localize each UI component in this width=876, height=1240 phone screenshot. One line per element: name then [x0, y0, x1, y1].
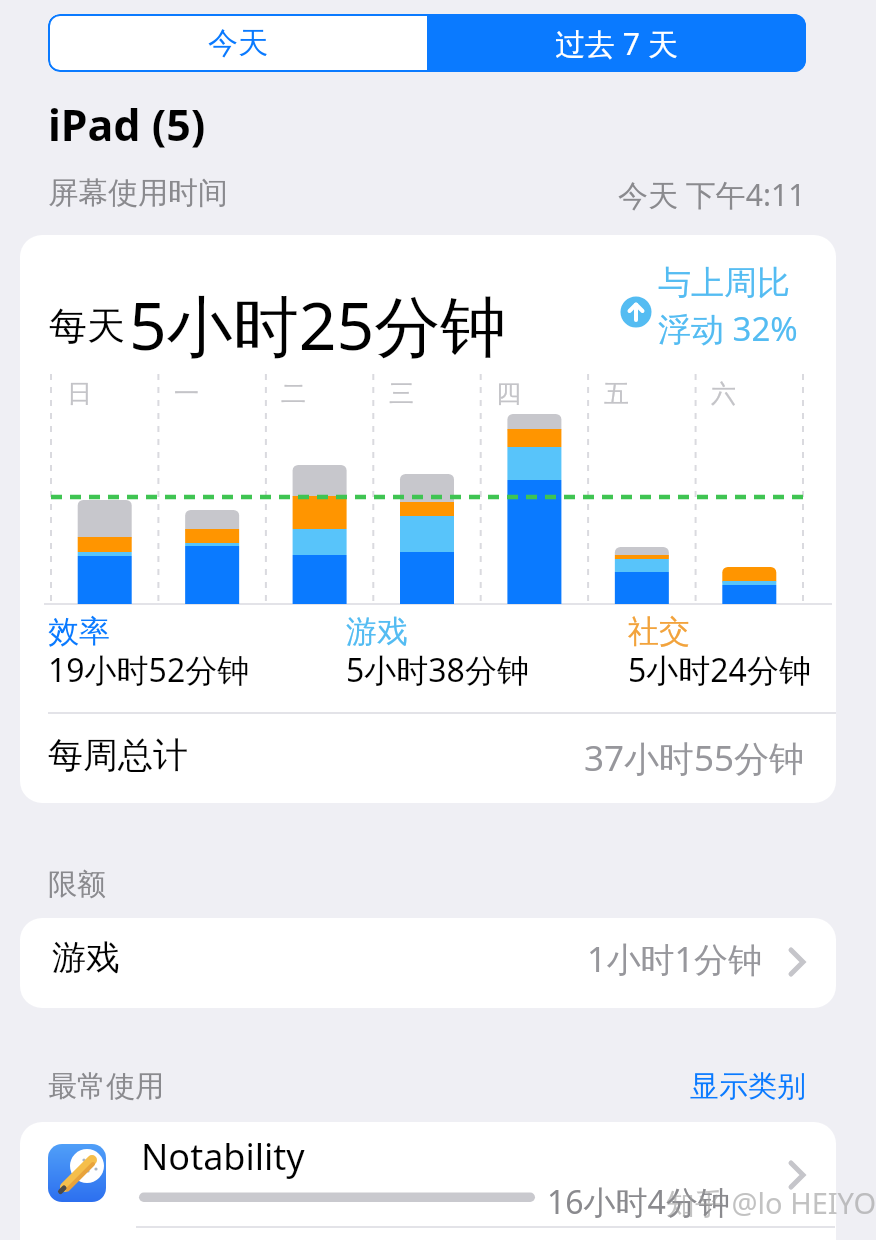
staticText: 今天	[208, 24, 268, 62]
staticText: 社交	[628, 612, 690, 651]
staticText: 限额	[48, 866, 106, 903]
staticText: 16小时4分钟	[547, 1180, 730, 1224]
staticText: 1小时1分钟	[587, 936, 762, 982]
button[interactable]: 过去 7 天	[427, 14, 806, 72]
staticText: 最常使用	[48, 1068, 164, 1105]
staticText: Notability	[141, 1132, 305, 1181]
button[interactable]	[20, 918, 836, 1008]
staticText: 五	[604, 378, 629, 409]
staticText: 与上周比	[658, 262, 790, 304]
staticText: 屏幕使用时间	[48, 174, 228, 212]
staticText: 5小时25分钟	[129, 279, 507, 369]
staticText: 日	[67, 378, 92, 409]
staticText: 5小时38分钟	[346, 648, 529, 692]
staticText: 5小时24分钟	[628, 648, 811, 692]
staticText: 每周总计	[48, 733, 188, 777]
staticText: 37小时55分钟	[584, 734, 805, 782]
staticText: 显示类别	[690, 1068, 806, 1105]
staticText: 三	[389, 378, 414, 409]
staticText: 每天	[49, 302, 125, 350]
staticText: 一	[174, 378, 199, 409]
staticText: 19小时52分钟	[48, 648, 250, 692]
staticText: 六	[711, 378, 736, 409]
staticText: 浮动 32%	[658, 306, 798, 351]
staticText: 效率	[48, 612, 110, 651]
button[interactable]: 今天	[48, 14, 427, 72]
button[interactable]	[20, 1122, 836, 1240]
staticText: 过去 7 天	[555, 23, 678, 64]
staticText: 知乎 @lo HEIYO	[666, 1183, 876, 1223]
staticText: iPad (5)	[48, 95, 206, 154]
staticText: 今天 下午4:11	[618, 174, 806, 215]
staticText: 游戏	[346, 612, 408, 651]
staticText: 二	[281, 378, 306, 409]
staticText: 游戏	[52, 936, 120, 979]
staticText: 四	[496, 378, 521, 409]
